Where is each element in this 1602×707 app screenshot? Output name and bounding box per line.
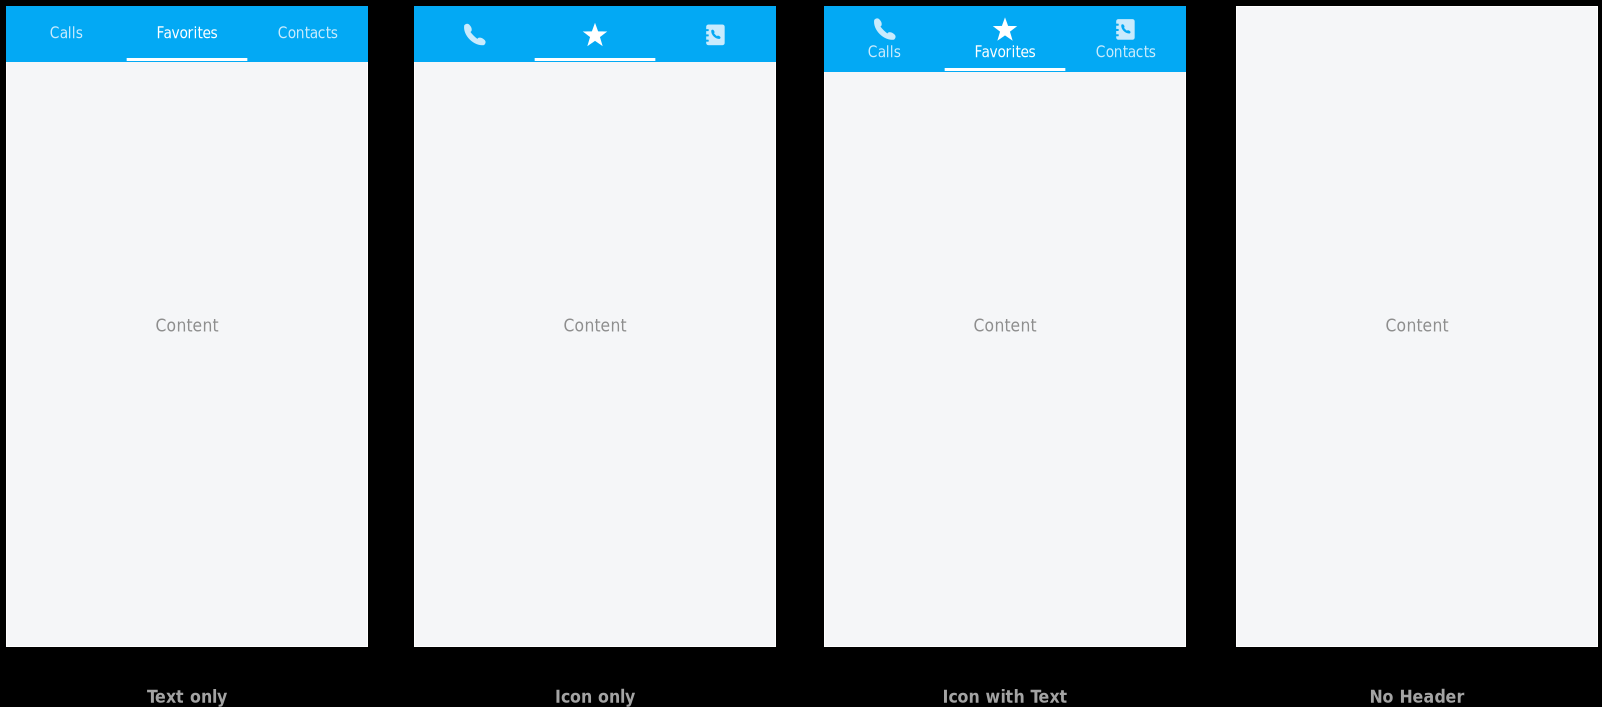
staticText: Content — [155, 315, 218, 336]
staticText: Content — [1385, 315, 1448, 336]
staticText: No Header — [1369, 686, 1464, 707]
staticText: Contacts — [1096, 43, 1156, 61]
staticText: Icon with Text — [942, 686, 1067, 707]
staticText: Text only — [147, 686, 227, 707]
button[interactable]: Contacts — [247, 6, 368, 62]
staticText: Favorites — [974, 43, 1035, 61]
button[interactable]: Favorites — [127, 6, 247, 62]
staticText: Favorites — [156, 24, 217, 42]
button[interactable]: Contacts — [655, 6, 776, 62]
staticText: Content — [563, 315, 626, 336]
button[interactable]: Contacts — [1065, 6, 1186, 72]
staticText: Calls — [868, 43, 901, 61]
button[interactable]: Calls — [6, 6, 127, 62]
staticText: Content — [973, 315, 1036, 336]
button[interactable]: Favorites — [945, 6, 1065, 72]
staticText: Icon only — [555, 686, 635, 707]
button[interactable]: Calls — [414, 6, 535, 62]
staticText: Calls — [50, 24, 83, 42]
button[interactable]: Favorites — [535, 6, 655, 62]
button[interactable]: Calls — [824, 6, 945, 72]
staticText: Contacts — [278, 24, 338, 42]
